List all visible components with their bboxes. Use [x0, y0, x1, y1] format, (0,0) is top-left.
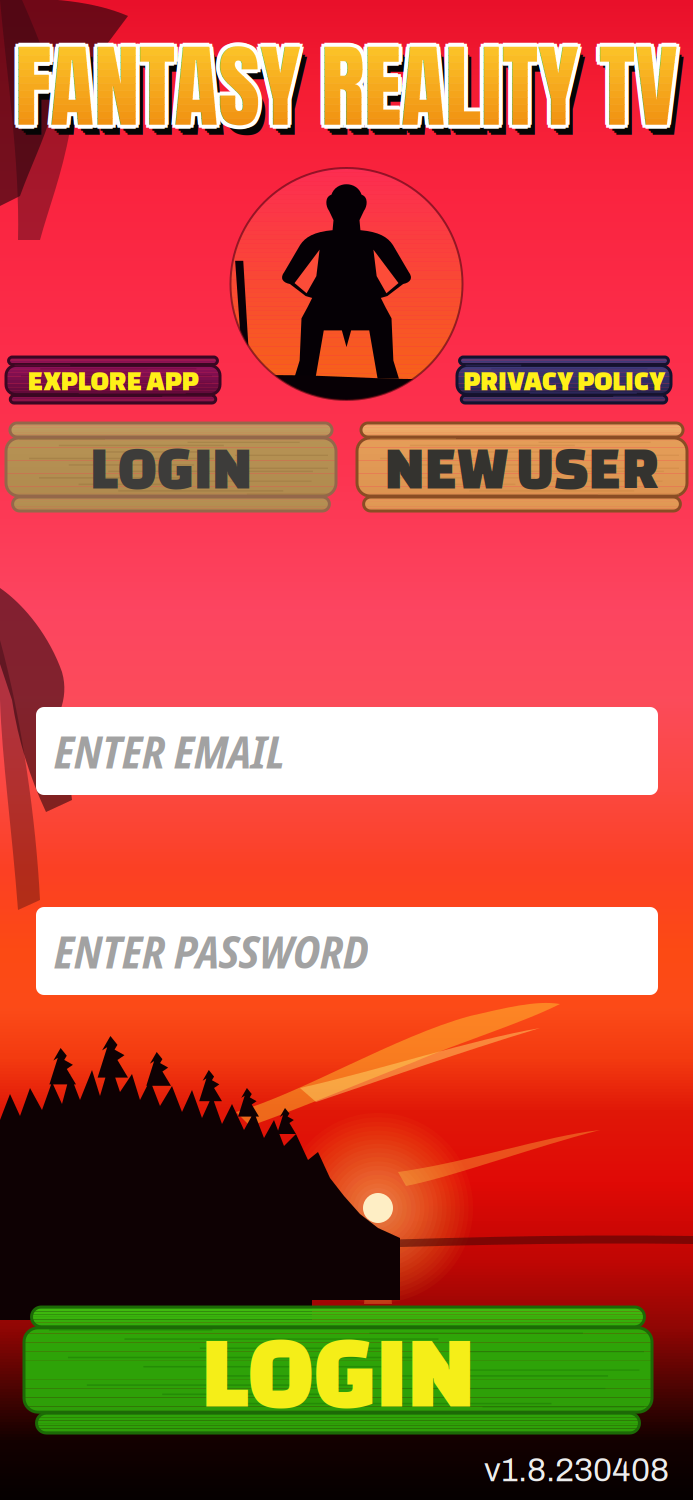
button[interactable]: EXPLORE APP — [6, 356, 220, 404]
staticText: FANTASY REALITY TV — [12, 15, 675, 151]
staticText: FANTASY REALITY TV — [15, 18, 678, 154]
button[interactable]: LOGIN — [24, 1306, 652, 1434]
staticText: FANTASY REALITY TV — [15, 18, 678, 154]
staticText: FANTASY REALITY TV — [15, 18, 678, 154]
staticText: FANTASY REALITY TV — [15, 18, 678, 154]
staticText: FANTASY REALITY TV — [15, 18, 678, 154]
staticText: ENTER PASSWORD — [54, 920, 368, 982]
staticText: FANTASY REALITY TV — [18, 15, 681, 151]
staticText: FANTASY REALITY TV — [22, 28, 685, 164]
staticText: FANTASY REALITY TV — [15, 18, 678, 154]
staticText: FANTASY REALITY TV — [20, 26, 683, 162]
staticText: FANTASY REALITY TV — [15, 18, 678, 154]
staticText: LOGIN — [90, 434, 252, 499]
staticText: FANTASY REALITY TV — [15, 18, 678, 154]
staticText: FANTASY REALITY TV — [15, 18, 678, 154]
staticText: v1.8.230408 — [484, 1452, 669, 1488]
button[interactable]: LOGIN — [6, 422, 336, 512]
button[interactable]: PRIVACY POLICY — [457, 356, 671, 404]
staticText: FANTASY REALITY TV — [11, 18, 674, 154]
staticText: FANTASY REALITY TV — [15, 18, 678, 154]
staticText: ENTER EMAIL — [54, 720, 285, 782]
staticText: NEW USER — [384, 434, 659, 499]
staticText: FANTASY REALITY TV — [15, 18, 678, 154]
staticText: FANTASY REALITY TV — [15, 18, 678, 154]
staticText: LOGIN — [201, 1315, 475, 1425]
staticText: FANTASY REALITY TV — [15, 14, 678, 150]
staticText: FANTASY REALITY TV — [15, 18, 678, 154]
button[interactable]: ENTER PASSWORD — [36, 907, 658, 995]
staticText: FANTASY REALITY TV — [15, 18, 678, 154]
button[interactable]: ENTER EMAIL — [36, 707, 658, 795]
staticText: FANTASY REALITY TV — [18, 21, 681, 157]
staticText: FANTASY REALITY TV — [15, 18, 678, 154]
staticText: FANTASY REALITY TV — [12, 21, 675, 157]
staticText: FANTASY REALITY TV — [19, 18, 682, 154]
button[interactable]: NEW USER — [357, 422, 687, 512]
staticText: FANTASY REALITY TV — [18, 24, 681, 160]
staticText: EXPLORE APP — [27, 364, 198, 396]
staticText: PRIVACY POLICY — [463, 364, 665, 396]
staticText: FANTASY REALITY TV — [15, 18, 678, 154]
staticText: FANTASY REALITY TV — [15, 22, 678, 158]
